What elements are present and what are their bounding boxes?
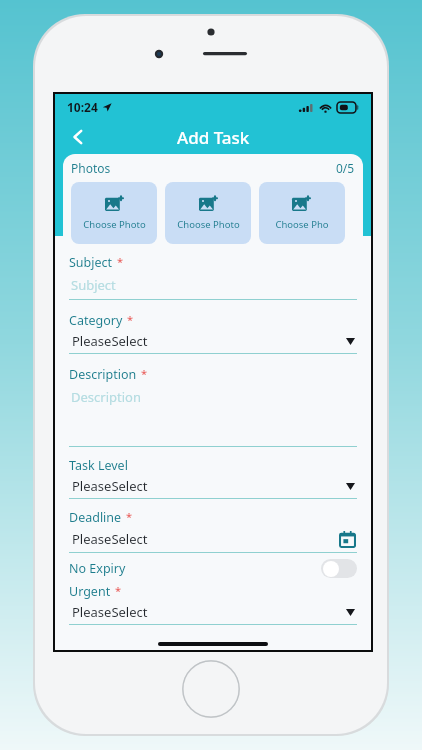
button[interactable]: PleaseSelect	[69, 474, 357, 499]
button[interactable]: PleaseSelect	[69, 329, 357, 354]
staticText: Description	[71, 388, 141, 406]
staticText: Choose Photo	[177, 218, 240, 231]
staticText: No Expiry	[69, 560, 126, 577]
staticText: Task Level	[69, 457, 128, 474]
staticText: Category	[69, 312, 123, 329]
staticText: 0/5	[336, 160, 355, 176]
staticText: PleaseSelect	[72, 332, 148, 350]
staticText: PleaseSelect	[72, 603, 148, 621]
staticText: PleaseSelect	[72, 477, 148, 495]
staticText: Subject	[69, 254, 113, 271]
staticText: Photos	[71, 160, 111, 176]
staticText: Choose Photo	[83, 218, 146, 231]
button[interactable]: Description	[69, 383, 357, 447]
staticText: *	[127, 312, 134, 327]
staticText: *	[141, 366, 148, 381]
button[interactable]: Subject	[69, 271, 357, 300]
staticText: Add Task	[177, 126, 250, 149]
button[interactable]: Home	[182, 660, 240, 718]
staticText: *	[117, 254, 124, 269]
staticText: *	[126, 509, 133, 524]
other: Pick date	[337, 529, 357, 549]
staticText: Subject	[71, 276, 116, 294]
button[interactable]: Choose Photo	[71, 182, 157, 244]
staticText: 10:24	[67, 99, 98, 115]
button[interactable]: Back	[61, 120, 95, 154]
button[interactable]: PleaseSelect	[69, 526, 357, 553]
button[interactable]: No Expiry	[69, 553, 357, 583]
button[interactable]: Choose Photo	[165, 182, 251, 244]
staticText: Urgent	[69, 583, 111, 600]
staticText: *	[115, 583, 122, 598]
staticText: Deadline	[69, 509, 122, 526]
staticText: Description	[69, 366, 137, 383]
button[interactable]: PleaseSelect	[69, 600, 357, 625]
staticText: PleaseSelect	[72, 530, 148, 548]
button[interactable]: Choose Pho	[259, 182, 345, 244]
staticText: Choose Pho	[275, 218, 329, 231]
